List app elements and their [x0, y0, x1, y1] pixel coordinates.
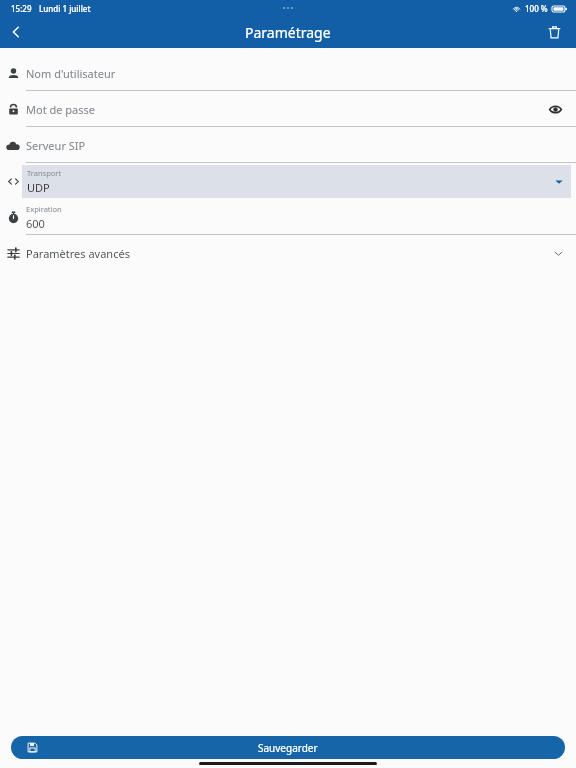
- button[interactable]: Transport: [0, 163, 576, 199]
- button[interactable]: Nom d'utilisateur: [0, 55, 576, 91]
- staticText: 600: [26, 216, 45, 231]
- button[interactable]: Expiration: [0, 199, 576, 235]
- button[interactable]: Delete: [540, 18, 568, 46]
- staticText: 15:29: [11, 3, 32, 14]
- button[interactable]: Serveur SIP: [0, 127, 576, 163]
- staticText: Sauvegarder: [258, 741, 318, 755]
- staticText: Nom d'utilisateur: [26, 66, 116, 81]
- button[interactable]: Paramètres avancés: [0, 235, 576, 271]
- button[interactable]: Mot de passe: [0, 91, 576, 127]
- staticText: 100 %: [525, 3, 548, 14]
- staticText: Mot de passe: [26, 102, 95, 117]
- staticText: Transport: [27, 168, 62, 178]
- staticText: Serveur SIP: [26, 138, 86, 153]
- staticText: Expiration: [26, 204, 62, 214]
- staticText: Lundi 1 juillet: [39, 3, 91, 14]
- button[interactable]: Show password: [544, 98, 566, 120]
- staticText: Paramètres avancés: [26, 246, 130, 261]
- button[interactable]: Sauvegarder: [11, 736, 565, 759]
- staticText: UDP: [27, 180, 50, 195]
- staticText: Paramétrage: [245, 23, 331, 42]
- button[interactable]: Back: [0, 16, 32, 48]
